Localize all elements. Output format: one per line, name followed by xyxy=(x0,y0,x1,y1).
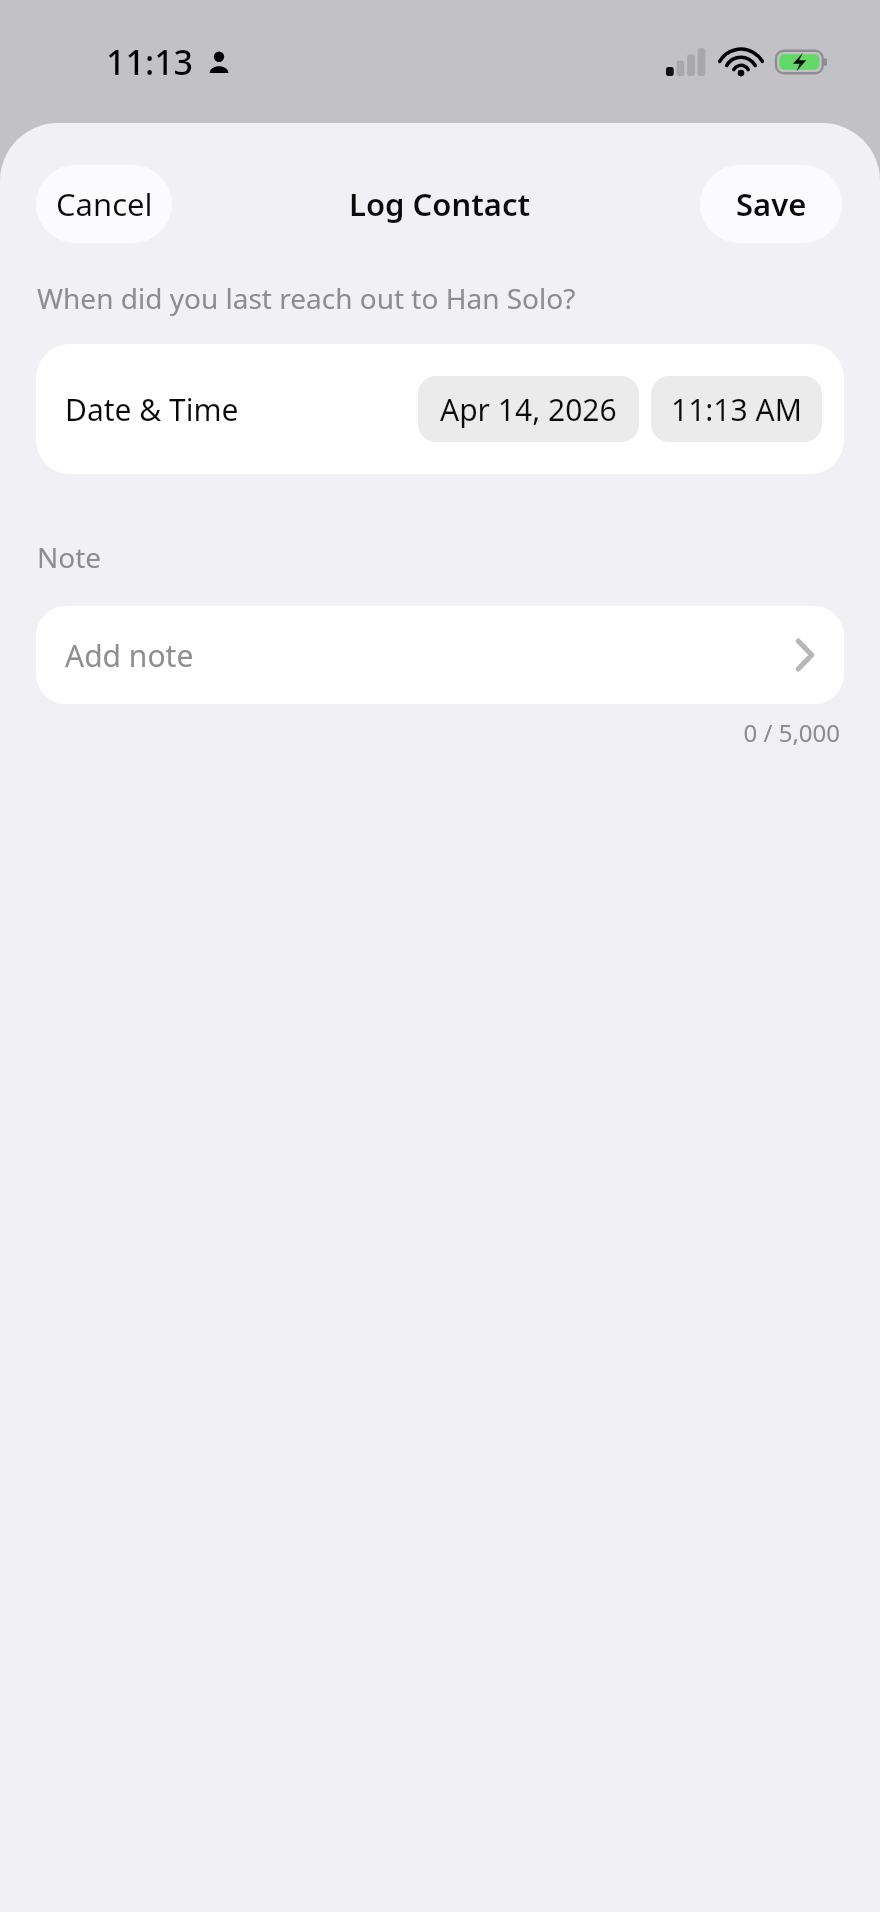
button[interactable]: Apr 14, 2026 xyxy=(418,376,639,442)
staticText: Date & Time xyxy=(65,389,239,430)
button[interactable]: Save xyxy=(700,165,842,243)
button[interactable]: 11:13 AM xyxy=(651,376,822,442)
button[interactable]: Date & Time xyxy=(36,344,844,474)
button[interactable]: Add note xyxy=(36,606,844,704)
staticText: Log Contact xyxy=(349,183,531,225)
staticText: When did you last reach out to Han Solo? xyxy=(37,279,576,317)
staticText: 11:13 AM xyxy=(671,389,802,430)
staticText: 0 / 5,000 xyxy=(0,716,840,749)
staticText: Save xyxy=(736,183,807,225)
staticText: Note xyxy=(37,538,102,576)
button[interactable]: Cancel xyxy=(36,165,172,243)
staticText: 11:13 xyxy=(106,39,194,85)
other: Open note editor xyxy=(796,639,814,671)
staticText: Add note xyxy=(65,635,194,676)
staticText: Cancel xyxy=(56,183,153,225)
staticText: Apr 14, 2026 xyxy=(440,389,617,430)
